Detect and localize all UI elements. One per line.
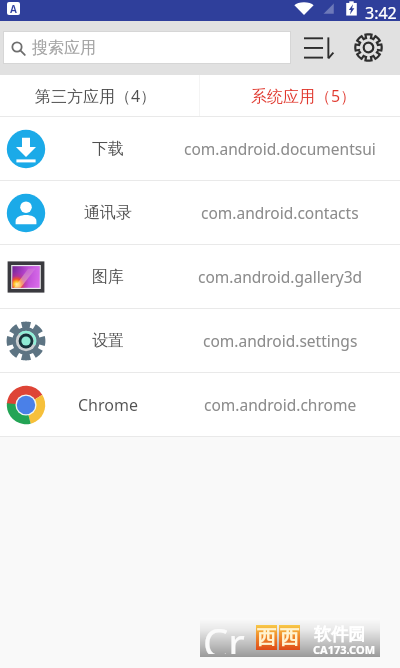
staticText: 软件园 bbox=[314, 624, 365, 645]
button[interactable]: 系统应用（5） bbox=[200, 75, 400, 116]
staticText: com.android.contacts bbox=[201, 202, 359, 223]
button[interactable]: Settings bbox=[350, 29, 386, 65]
staticText: com.android.chrome bbox=[204, 394, 357, 415]
button[interactable]: 图库 bbox=[0, 245, 400, 308]
staticText: 3:42 bbox=[365, 2, 397, 23]
staticText: 下载 bbox=[92, 139, 124, 159]
staticText: 搜索应用 bbox=[32, 38, 96, 58]
button[interactable]: 通讯录 bbox=[0, 181, 400, 244]
staticText: 西 bbox=[257, 626, 276, 650]
button[interactable]: 下载 bbox=[0, 117, 400, 180]
staticText: 西 bbox=[280, 626, 299, 650]
staticText: Cr bbox=[203, 615, 245, 654]
button[interactable]: Chrome bbox=[0, 373, 400, 436]
staticText: CA173.COM bbox=[313, 642, 376, 657]
staticText: Chrome bbox=[78, 394, 138, 416]
staticText: 系统应用（5） bbox=[251, 85, 357, 107]
staticText: 设置 bbox=[92, 331, 124, 351]
button[interactable]: Sort bbox=[301, 32, 335, 63]
button[interactable]: 设置 bbox=[0, 309, 400, 372]
staticText: com.android.settings bbox=[203, 330, 358, 351]
staticText: 通讯录 bbox=[84, 203, 132, 223]
button[interactable]: 搜索应用 bbox=[3, 31, 291, 64]
staticText: com.android.documentsui bbox=[184, 138, 376, 159]
staticText: 图库 bbox=[92, 267, 124, 287]
staticText: A bbox=[10, 2, 17, 15]
button[interactable]: 第三方应用（4） bbox=[0, 75, 199, 116]
staticText: 第三方应用（4） bbox=[35, 85, 157, 107]
staticText: com.android.gallery3d bbox=[198, 266, 363, 287]
